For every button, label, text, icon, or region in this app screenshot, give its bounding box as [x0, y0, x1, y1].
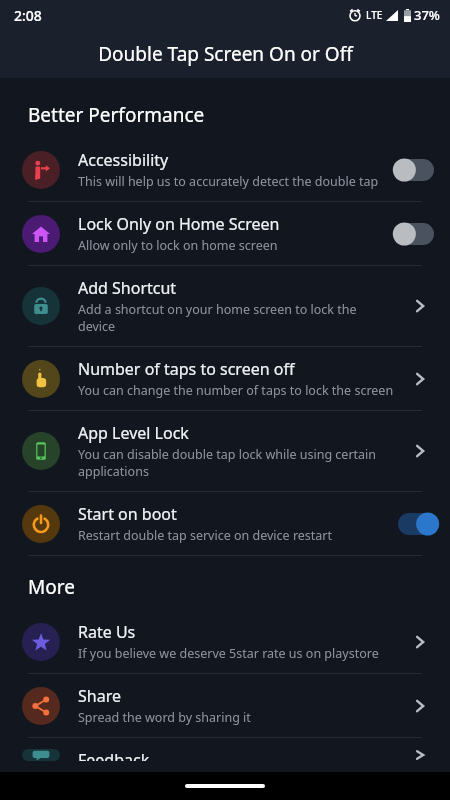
- staticText: Start on boot: [78, 503, 177, 525]
- other: Open: [400, 359, 440, 399]
- other: Open: [400, 286, 440, 326]
- staticText: 37%: [414, 6, 440, 24]
- staticText: 2:08: [14, 6, 42, 25]
- staticText: Lock Only on Home Screen: [78, 213, 280, 235]
- button[interactable]: Add Shortcut: [0, 266, 450, 346]
- staticText: Accessibility: [78, 149, 169, 171]
- staticText: App Level Lock: [78, 422, 189, 444]
- other: Open: [400, 749, 440, 761]
- staticText: Add Shortcut: [78, 277, 177, 299]
- button[interactable]: Feedback: [0, 738, 450, 772]
- staticText: Allow only to lock on home screen: [78, 237, 278, 254]
- staticText: You can change the number of taps to loc…: [78, 382, 394, 399]
- button[interactable]: App Level Lock: [0, 411, 450, 491]
- button[interactable]: Number of taps to screen off: [0, 347, 450, 410]
- staticText: Restart double tap service on device res…: [78, 527, 333, 544]
- staticText: If you believe we deserve 5star rate us …: [78, 645, 379, 662]
- button[interactable]: Toggle off: [392, 218, 440, 250]
- staticText: Better Performance: [28, 102, 205, 128]
- button[interactable]: Start on boot: [0, 492, 450, 555]
- staticText: Share: [78, 685, 121, 707]
- staticText: You can disable double tap lock while us…: [78, 446, 396, 480]
- staticText: Number of taps to screen off: [78, 358, 295, 380]
- button[interactable]: Lock Only on Home Screen: [0, 202, 450, 265]
- staticText: Feedback: [78, 749, 150, 761]
- staticText: This will help us to accurately detect t…: [78, 173, 379, 190]
- staticText: Rate Us: [78, 621, 136, 643]
- staticText: LTE: [366, 8, 383, 22]
- button[interactable]: Share: [0, 674, 450, 737]
- staticText: More: [28, 574, 75, 600]
- button[interactable]: Accessibility: [0, 138, 450, 201]
- other: Open: [400, 686, 440, 726]
- other: Open: [400, 622, 440, 662]
- other: Open: [400, 431, 440, 471]
- button[interactable]: Toggle on: [392, 508, 440, 540]
- button[interactable]: Toggle off: [392, 154, 440, 186]
- staticText: Spread the word by sharing it: [78, 709, 251, 726]
- button[interactable]: Rate Us: [0, 610, 450, 673]
- staticText: Double Tap Screen On or Off: [98, 41, 353, 67]
- staticText: Add a shortcut on your home screen to lo…: [78, 301, 396, 335]
